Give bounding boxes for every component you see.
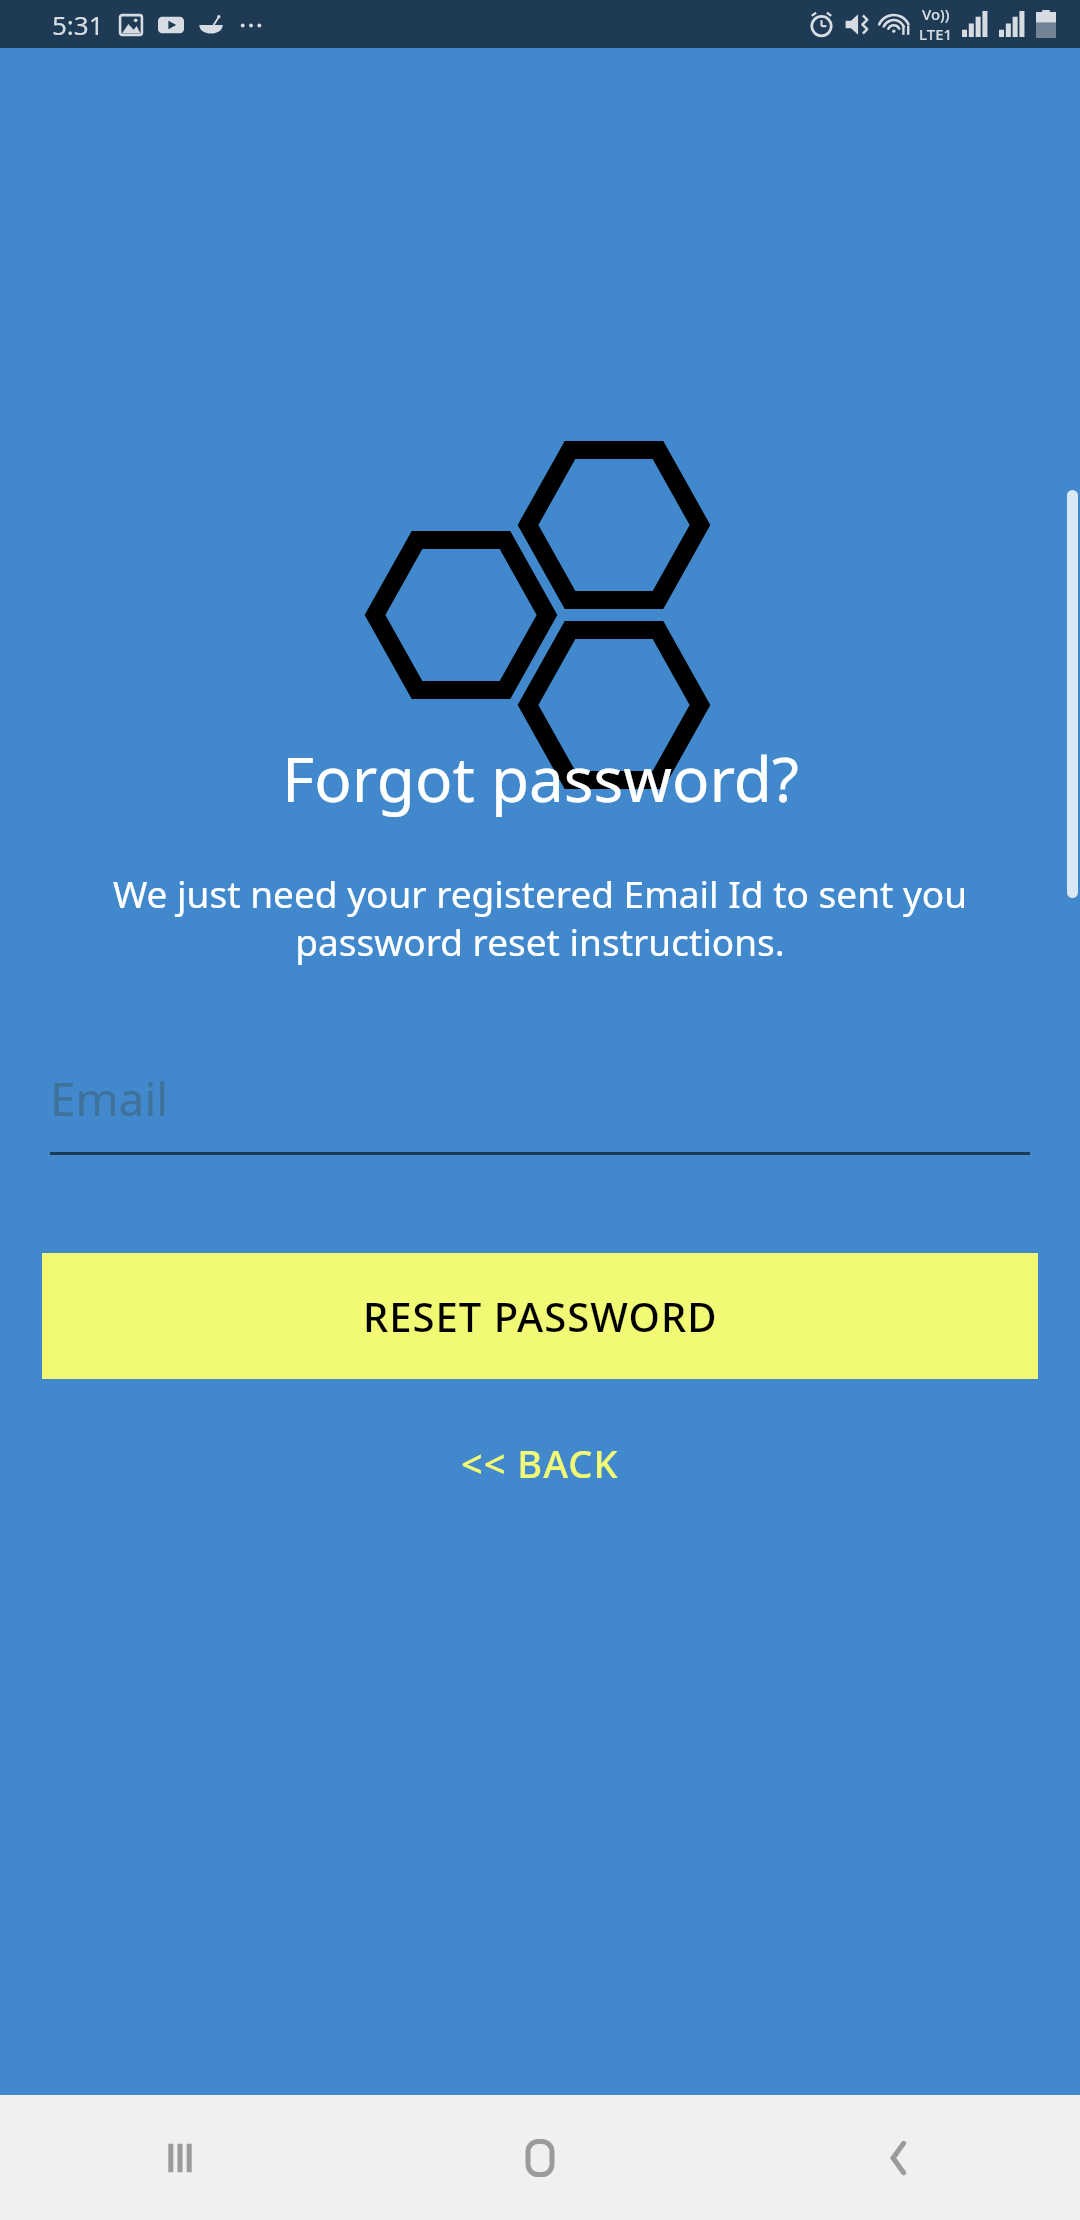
button[interactable]: Recent apps bbox=[0, 2095, 360, 2220]
staticText: << BACK bbox=[461, 1437, 619, 1489]
staticText: RESET PASSWORD bbox=[363, 1289, 718, 1343]
staticText: 5:31 bbox=[52, 7, 104, 42]
button[interactable]: Home bbox=[360, 2095, 720, 2220]
button[interactable]: RESET PASSWORD bbox=[42, 1253, 1038, 1379]
button[interactable]: Back bbox=[720, 2095, 1080, 2220]
staticText: Forgot password? bbox=[282, 736, 799, 820]
button[interactable]: << BACK bbox=[421, 1423, 659, 1503]
staticText: Vo)) bbox=[922, 4, 950, 24]
staticText: We just need your registered Email Id to… bbox=[74, 868, 1006, 967]
button[interactable]: Email bbox=[50, 1067, 1030, 1155]
staticText: Email bbox=[50, 1067, 169, 1130]
staticText: LTE1 bbox=[919, 24, 953, 44]
